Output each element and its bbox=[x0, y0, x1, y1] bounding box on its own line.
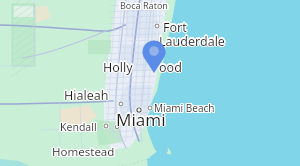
button[interactable]: Map of South Florida bbox=[0, 0, 300, 166]
other: Selected location marker bbox=[0, 0, 300, 166]
